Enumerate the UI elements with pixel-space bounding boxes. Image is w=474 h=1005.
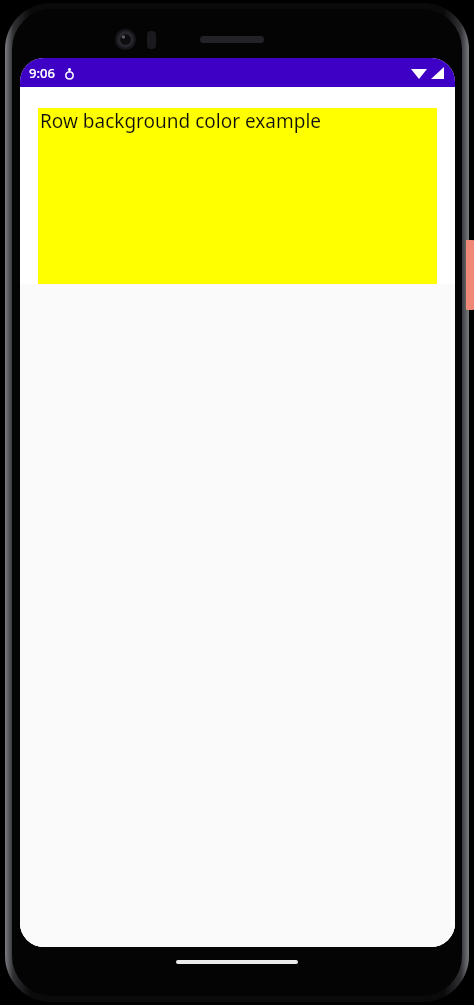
staticText: Row background color example xyxy=(40,108,322,134)
other: Power button xyxy=(466,240,474,310)
staticText: 9:06 xyxy=(29,64,55,82)
button[interactable]: Home gesture bar xyxy=(176,960,298,964)
button[interactable]: Row background color example xyxy=(38,108,437,284)
